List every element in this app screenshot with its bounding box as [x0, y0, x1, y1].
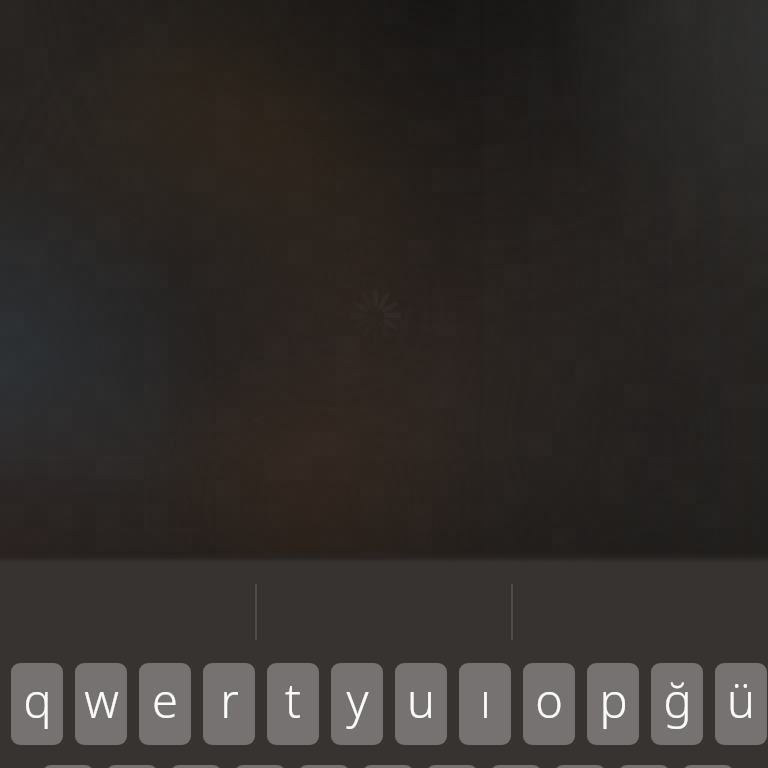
- button[interactable]: u: [395, 663, 447, 745]
- staticText: w: [84, 668, 119, 732]
- staticText: p: [599, 668, 628, 732]
- button[interactable]: q: [11, 663, 63, 745]
- staticText: r: [220, 668, 239, 732]
- button[interactable]: i: [682, 765, 734, 768]
- staticText: o: [535, 668, 563, 732]
- staticText: ı: [480, 668, 491, 732]
- button[interactable]: k: [490, 765, 542, 768]
- staticText: q: [23, 668, 52, 732]
- button[interactable]: a: [42, 765, 94, 768]
- button[interactable]: g: [298, 765, 350, 768]
- button[interactable]: e: [139, 663, 191, 745]
- button[interactable]: ş: [618, 765, 670, 768]
- staticText: ü: [727, 668, 755, 732]
- staticText: y: [346, 668, 369, 732]
- button[interactable]: j: [426, 765, 478, 768]
- button[interactable]: l: [554, 765, 606, 768]
- staticText: t: [285, 668, 301, 732]
- button[interactable]: t: [267, 663, 319, 745]
- button[interactable]: p: [587, 663, 639, 745]
- button[interactable]: ü: [715, 663, 767, 745]
- button[interactable]: ğ: [651, 663, 703, 745]
- button[interactable]: s: [106, 765, 158, 768]
- button[interactable]: f: [234, 765, 286, 768]
- button[interactable]: o: [523, 663, 575, 745]
- button[interactable]: y: [331, 663, 383, 745]
- staticText: ğ: [663, 668, 692, 732]
- staticText: u: [407, 668, 435, 732]
- button[interactable]: r: [203, 663, 255, 745]
- button[interactable]: d: [170, 765, 222, 768]
- staticText: e: [152, 668, 178, 732]
- button[interactable]: h: [362, 765, 414, 768]
- button[interactable]: w: [75, 663, 127, 745]
- button[interactable]: ı: [459, 663, 511, 745]
